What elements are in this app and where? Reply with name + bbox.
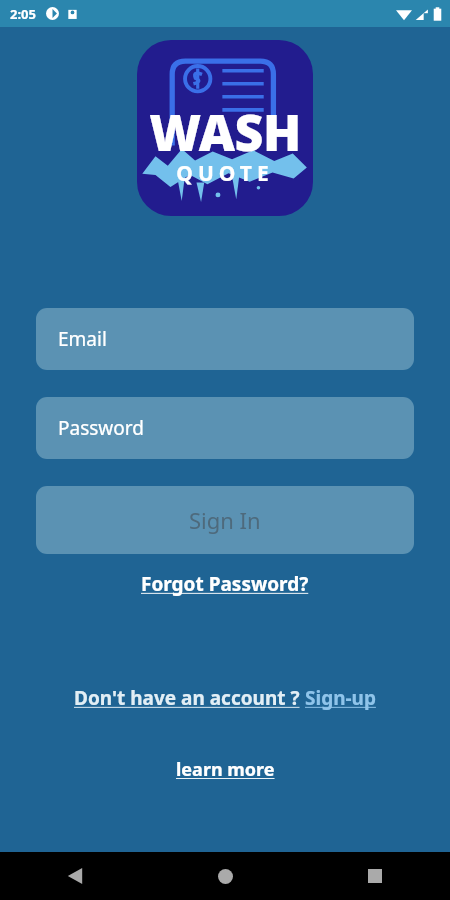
staticText: Password	[58, 415, 144, 441]
staticText: WASH	[149, 98, 301, 166]
staticText: QUOTE	[176, 159, 274, 188]
button[interactable]: Email	[36, 308, 414, 370]
button[interactable]: learn more	[166, 754, 285, 785]
staticText: 2:05	[10, 5, 36, 23]
button[interactable]: Forgot Password?	[131, 568, 319, 600]
button[interactable]: Home	[203, 854, 247, 898]
staticText: Forgot Password?	[141, 571, 309, 597]
staticText: Email	[58, 326, 107, 352]
button[interactable]: Wash Quote logo	[137, 40, 313, 216]
button[interactable]: Back	[53, 854, 97, 898]
staticText: learn more	[176, 757, 275, 782]
button[interactable]: Don't have an account ?	[66, 682, 384, 714]
staticText: Sign In	[189, 505, 261, 535]
button[interactable]: Sign In	[36, 486, 414, 554]
button[interactable]: Recent apps	[353, 854, 397, 898]
staticText: Don't have an account ?	[74, 685, 305, 711]
button[interactable]: Password	[36, 397, 414, 459]
staticText: Sign-up	[305, 685, 376, 711]
